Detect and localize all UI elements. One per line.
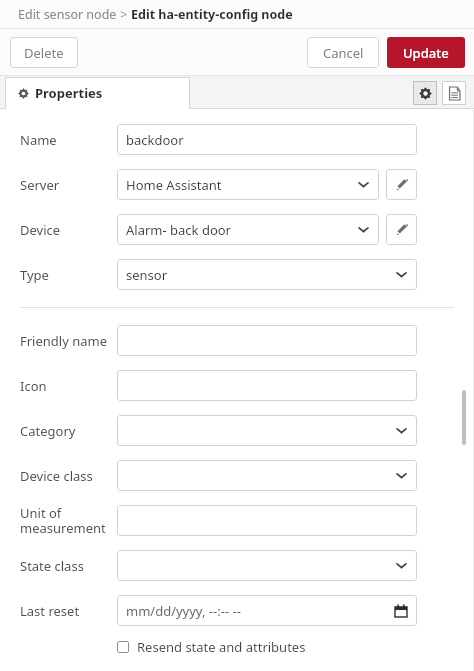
staticText: sensor	[126, 266, 168, 284]
button[interactable]: sensor	[117, 259, 417, 290]
button[interactable]: mm/dd/yyyy, --:-- --	[117, 595, 417, 626]
button[interactable]: backdoor	[117, 124, 417, 155]
button[interactable]	[117, 415, 417, 446]
button[interactable]: Settings	[413, 81, 437, 105]
staticText: Category	[20, 422, 76, 440]
button[interactable]: Edit	[386, 214, 417, 245]
staticText: Delete	[24, 44, 64, 62]
staticText: Edit sensor node	[18, 6, 117, 23]
button[interactable]: Properties	[5, 77, 190, 109]
staticText: backdoor	[126, 131, 184, 149]
staticText: Home Assistant	[126, 176, 222, 194]
button[interactable]	[117, 460, 417, 491]
staticText: Update	[403, 44, 449, 62]
button[interactable]: Delete	[10, 37, 78, 68]
button[interactable]	[117, 505, 417, 536]
staticText: Type	[20, 266, 49, 284]
staticText: Edit ha-entity-config node	[131, 6, 293, 23]
staticText: Friendly name	[20, 332, 108, 350]
staticText: Icon	[20, 377, 47, 395]
staticText: State class	[20, 557, 84, 575]
button[interactable]: Description	[442, 81, 466, 105]
staticText: Cancel	[323, 44, 364, 62]
staticText: mm/dd/yyyy, --:-- --	[126, 602, 241, 620]
button[interactable]: Edit	[386, 169, 417, 200]
staticText: Server	[20, 176, 60, 194]
staticText: Last reset	[20, 602, 80, 620]
staticText: Name	[20, 131, 57, 149]
button[interactable]: Alarm- back door	[117, 214, 379, 245]
staticText: Unit of measurement	[20, 504, 106, 537]
button[interactable]	[117, 550, 417, 581]
staticText: Device	[20, 221, 61, 239]
staticText: Device class	[20, 467, 93, 485]
staticText: >	[117, 6, 131, 23]
button[interactable]: Cancel	[307, 37, 379, 68]
staticText: Properties	[35, 84, 103, 102]
staticText: Alarm- back door	[126, 221, 231, 239]
staticText: Resend state and attributes	[137, 638, 306, 656]
button[interactable]: Update	[387, 37, 465, 68]
button[interactable]: Resend state and attributes	[117, 638, 306, 656]
button[interactable]	[117, 370, 417, 401]
button[interactable]	[117, 325, 417, 356]
button[interactable]: Home Assistant	[117, 169, 379, 200]
